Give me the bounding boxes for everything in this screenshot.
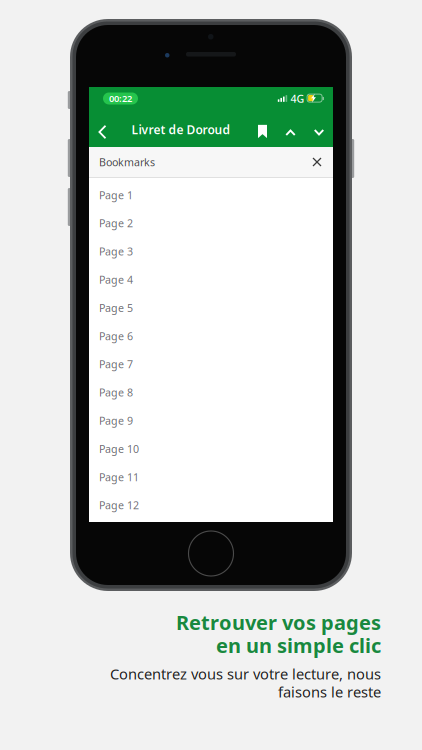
- staticText: Concentrez vous sur votre lecture, nous: [110, 664, 381, 683]
- staticText: Page 1: [99, 188, 133, 202]
- staticText: Page 7: [99, 357, 133, 371]
- staticText: Page 3: [99, 244, 133, 258]
- button[interactable]: Page 4: [89, 265, 333, 294]
- staticText: en un simple clic: [216, 632, 381, 659]
- button[interactable]: Scroll down: [306, 114, 332, 151]
- staticText: Bookmarks: [99, 155, 155, 169]
- staticText: Livret de Doroud: [131, 121, 230, 137]
- staticText: Page 5: [99, 301, 133, 315]
- button[interactable]: Page 7: [89, 350, 333, 378]
- button[interactable]: Page 10: [89, 435, 333, 463]
- button[interactable]: Page 3: [89, 237, 333, 265]
- button[interactable]: Page 8: [89, 378, 333, 406]
- staticText: Page 2: [99, 216, 133, 230]
- button[interactable]: Close bookmarks: [306, 151, 328, 173]
- button[interactable]: Page 12: [89, 491, 333, 519]
- staticText: Page 6: [99, 329, 133, 343]
- button[interactable]: Page 6: [89, 322, 333, 350]
- button[interactable]: Page 1: [89, 181, 333, 209]
- button[interactable]: Page 11: [89, 463, 333, 491]
- staticText: Page 10: [99, 442, 139, 456]
- staticText: Page 8: [99, 385, 133, 399]
- button[interactable]: Page 5: [89, 294, 333, 322]
- button[interactable]: Page 2: [89, 209, 333, 237]
- button[interactable]: Back: [89, 113, 115, 150]
- staticText: Page 4: [99, 272, 133, 287]
- button[interactable]: Bookmark: [249, 113, 275, 150]
- button[interactable]: Page 9: [89, 406, 333, 435]
- staticText: Page 11: [99, 470, 139, 484]
- staticText: Page 12: [99, 498, 139, 512]
- staticText: 00:22: [109, 92, 132, 105]
- staticText: Page 9: [99, 413, 133, 428]
- staticText: faisons le reste: [278, 682, 381, 701]
- button[interactable]: Scroll up: [277, 114, 303, 151]
- button[interactable]: Livret de Doroud: [131, 111, 231, 148]
- staticText: 4G: [290, 91, 304, 106]
- staticText: Retrouver vos pages: [176, 609, 381, 636]
